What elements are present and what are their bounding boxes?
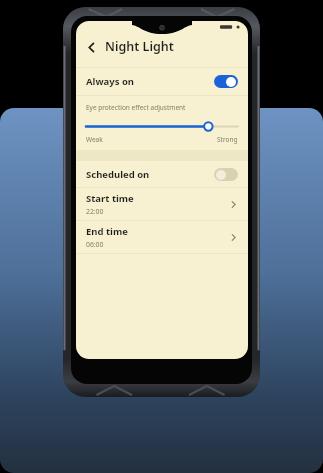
staticText: Start time	[86, 192, 134, 205]
staticText: Eye protection effect adjustment	[86, 103, 186, 112]
button[interactable]: Toggle off	[214, 168, 238, 181]
staticText: Strong	[217, 135, 238, 144]
staticText: End time	[86, 225, 128, 238]
button[interactable]: End time	[76, 221, 248, 253]
button[interactable]: Back	[82, 38, 100, 56]
staticText: 22:00	[86, 207, 104, 216]
staticText: Always on	[86, 75, 135, 88]
button[interactable]: Scheduled on	[76, 161, 248, 187]
staticText: Weak	[86, 135, 103, 144]
staticText: 06:00	[86, 240, 104, 249]
staticText: Night Light	[105, 38, 174, 55]
staticText: Scheduled on	[86, 168, 150, 181]
button[interactable]: Toggle on	[214, 75, 238, 88]
button[interactable]: Brightness slider	[86, 121, 238, 132]
button[interactable]: Start time	[76, 188, 248, 220]
button[interactable]: Always on	[76, 68, 248, 95]
